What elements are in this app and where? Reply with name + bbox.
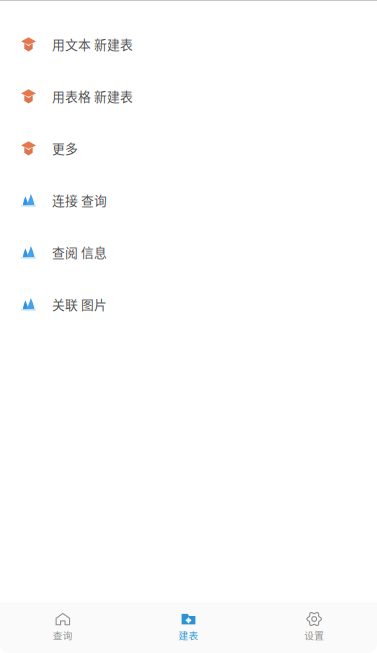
staticText: 设置 (304, 628, 324, 642)
staticText: 用表格 新建表 (52, 87, 133, 105)
button[interactable]: 用表格 新建表 (0, 70, 377, 122)
staticText: 关联 图片 (52, 295, 107, 313)
staticText: 用文本 新建表 (52, 35, 133, 53)
button[interactable]: 用文本 新建表 (0, 18, 377, 70)
button[interactable]: 设置 (251, 602, 377, 653)
button[interactable]: 连接 查询 (0, 174, 377, 226)
staticText: 建表 (178, 628, 198, 642)
button[interactable]: 查询 (0, 602, 126, 653)
button[interactable]: 更多 (0, 122, 377, 174)
staticText: 查阅 信息 (52, 243, 107, 261)
staticText: 更多 (52, 139, 78, 157)
staticText: 连接 查询 (52, 191, 107, 209)
button[interactable]: 建表 (126, 602, 251, 653)
button[interactable]: 查阅 信息 (0, 226, 377, 278)
button[interactable]: 关联 图片 (0, 278, 377, 330)
staticText: 查询 (53, 628, 73, 642)
